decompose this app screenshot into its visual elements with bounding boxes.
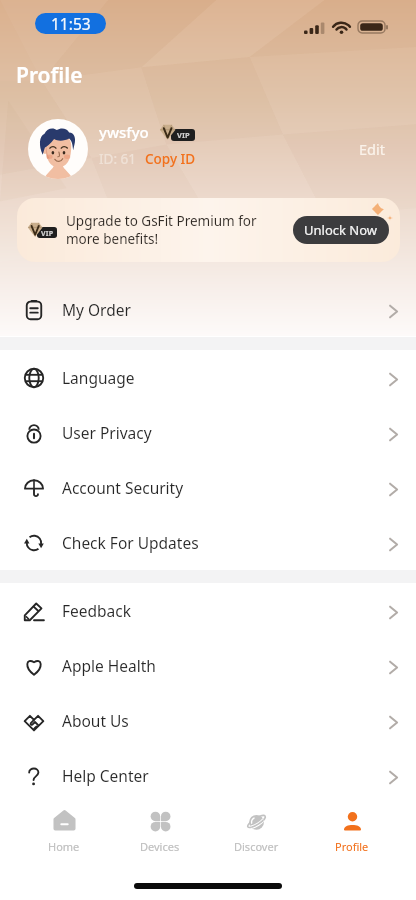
staticText: Upgrade to GsFit Premium for more benefi…: [66, 212, 257, 248]
staticText: Help Center: [62, 765, 149, 786]
staticText: User Privacy: [62, 422, 152, 443]
button[interactable]: Apple Health: [0, 638, 416, 693]
button[interactable]: My Order: [0, 282, 416, 337]
staticText: My Order: [62, 299, 131, 320]
button[interactable]: Discover: [208, 804, 304, 860]
staticText: Account Security: [62, 477, 184, 498]
staticText: Language: [62, 367, 135, 388]
staticText: Edit: [359, 139, 385, 159]
staticText: Profile: [335, 839, 369, 854]
staticText: Check For Updates: [62, 532, 199, 553]
staticText: Feedback: [62, 600, 132, 621]
button[interactable]: Help Center: [0, 748, 416, 803]
staticText: Unlock Now: [304, 221, 378, 239]
button[interactable]: Devices: [112, 804, 208, 860]
staticText: ID: 61: [99, 150, 137, 168]
button[interactable]: Profile: [304, 804, 400, 860]
button[interactable]: Check For Updates: [0, 515, 416, 570]
button[interactable]: VIP: [17, 198, 400, 262]
staticText: VIP: [177, 130, 190, 140]
staticText: Profile: [16, 61, 83, 90]
staticText: ywsfyo: [99, 122, 149, 142]
staticText: Apple Health: [62, 655, 156, 676]
button[interactable]: Home: [16, 804, 112, 860]
button[interactable]: Feedback: [0, 583, 416, 638]
staticText: Home: [48, 839, 80, 854]
staticText: Copy ID: [145, 150, 196, 168]
button[interactable]: Account Security: [0, 460, 416, 515]
staticText: VIP: [41, 228, 54, 238]
staticText: Devices: [140, 839, 180, 854]
staticText: About Us: [62, 710, 129, 731]
button[interactable]: About Us: [0, 693, 416, 748]
staticText: 11:53: [51, 13, 91, 34]
button[interactable]: Unlock Now: [293, 216, 389, 244]
button[interactable]: User Privacy: [0, 405, 416, 460]
staticText: Discover: [234, 839, 279, 854]
button[interactable]: Edit: [349, 133, 400, 165]
button[interactable]: Language: [0, 350, 416, 405]
button[interactable]: Copy ID: [141, 148, 200, 170]
